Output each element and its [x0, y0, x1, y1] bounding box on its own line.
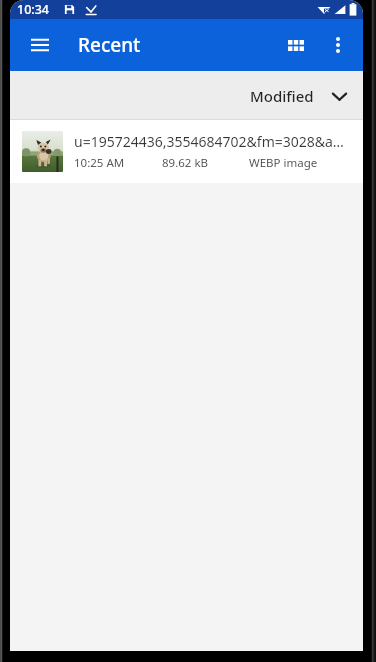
staticText: Modified	[250, 86, 314, 106]
button[interactable]: Modified	[242, 80, 355, 112]
staticText: Recent	[78, 32, 141, 58]
button[interactable]: Show roots	[20, 25, 60, 65]
staticText: 10:25 AM	[74, 155, 125, 171]
staticText: 10:34	[17, 1, 50, 18]
staticText: WEBP image	[249, 155, 318, 171]
button[interactable]: Grid view	[275, 24, 317, 66]
button[interactable]: More options	[317, 24, 359, 66]
staticText: 89.62 kB	[162, 155, 208, 171]
button[interactable]: u=195724436,3554684702&fm=3028&a…	[10, 120, 363, 183]
staticText: u=195724436,3554684702&fm=3028&a…	[74, 132, 344, 151]
